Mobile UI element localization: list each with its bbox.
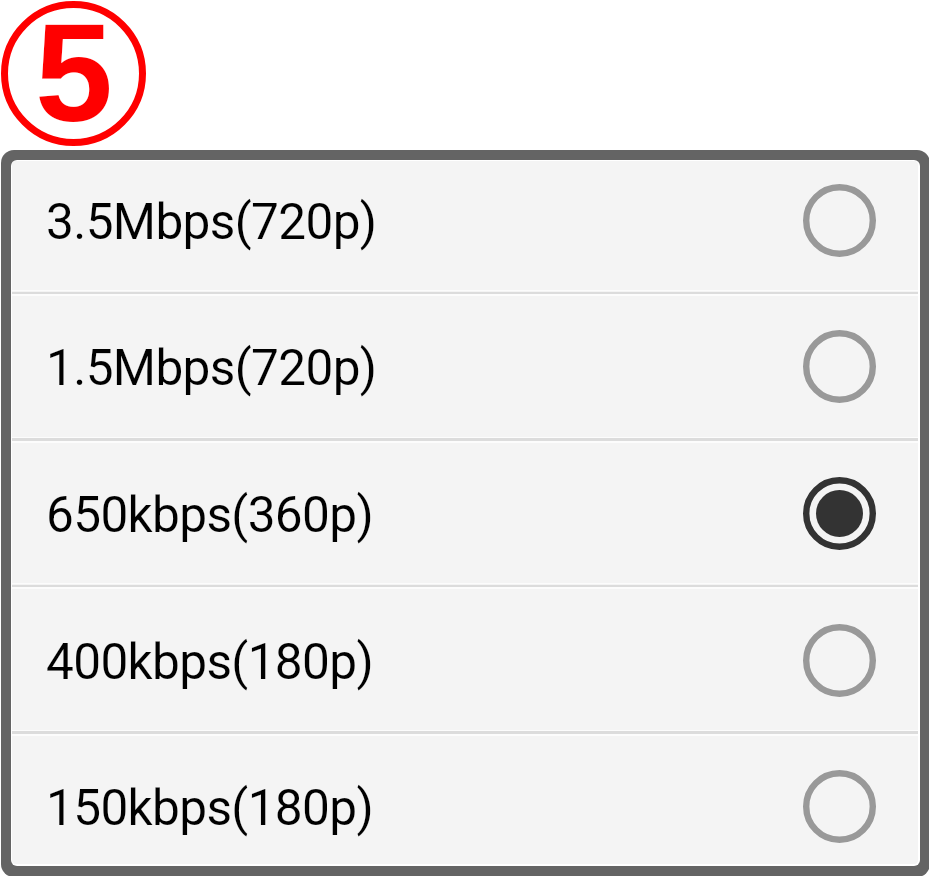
button[interactable]: 400kbps(180p): [12, 587, 918, 734]
button[interactable]: 1.5Mbps(720p): [12, 293, 918, 440]
button[interactable]: 650kbps(360p): [12, 440, 918, 587]
button[interactable]: 3.5Mbps(720p): [12, 161, 918, 294]
staticText: 400kbps(180p): [46, 633, 374, 691]
other: 650kbps(360p), selected: [803, 477, 876, 550]
staticText: 150kbps(180p): [46, 779, 374, 837]
other: 400kbps(180p), not selected: [803, 624, 876, 697]
other: Step 5 marker: [1, 1, 146, 146]
staticText: 650kbps(360p): [46, 486, 374, 544]
staticText: 5: [35, 0, 113, 139]
other: 150kbps(180p), not selected: [803, 770, 876, 843]
button[interactable]: 150kbps(180p): [12, 733, 918, 864]
other: 3.5Mbps(720p), not selected: [803, 184, 876, 257]
staticText: 1.5Mbps(720p): [46, 339, 377, 397]
other: 1.5Mbps(720p), not selected: [803, 330, 876, 403]
staticText: 3.5Mbps(720p): [46, 193, 377, 251]
